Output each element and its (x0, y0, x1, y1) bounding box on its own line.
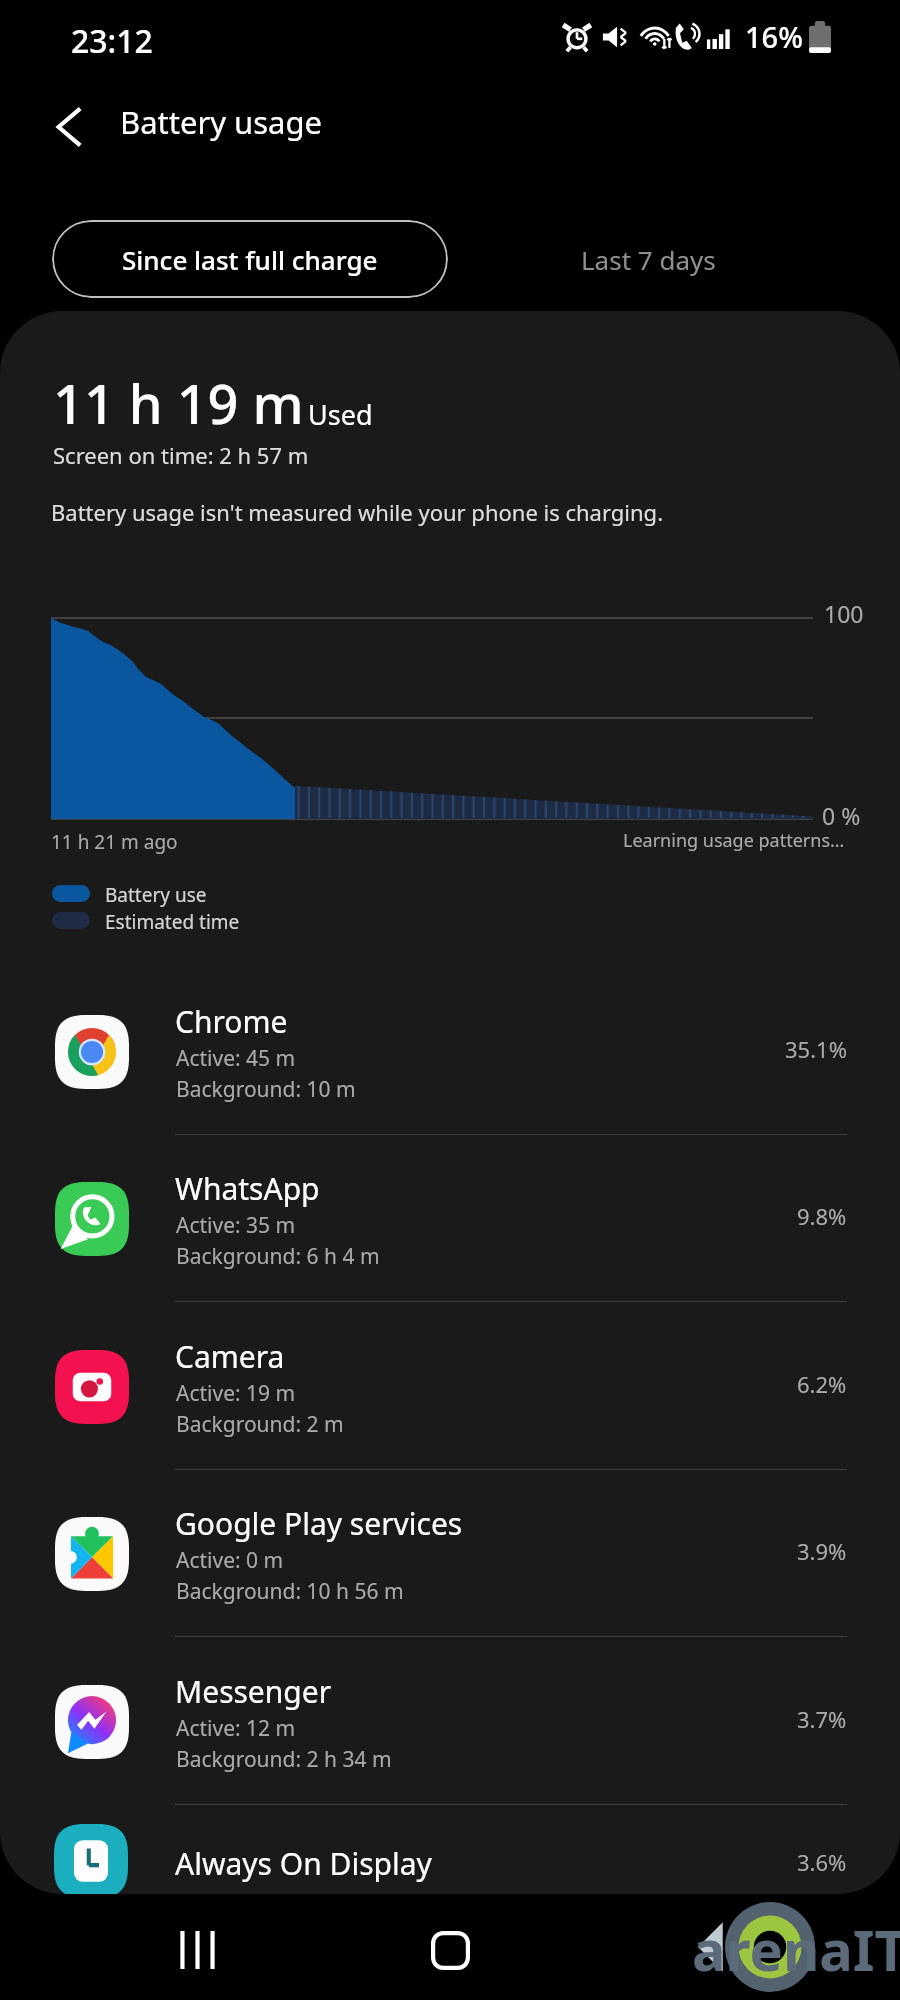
staticText: Active: 0 m (176, 1546, 284, 1575)
staticText: Estimated time (105, 909, 240, 935)
staticText: Messenger (175, 1671, 332, 1712)
button[interactable]: Always On Display (0, 1822, 900, 1894)
button[interactable]: WhatsApp (0, 1152, 900, 1319)
staticText: 35.1% (785, 1034, 847, 1064)
staticText: Background: 2 h 34 m (176, 1745, 392, 1774)
button[interactable]: Messenger (0, 1655, 900, 1822)
staticText: Used (308, 396, 373, 433)
staticText: WhatsApp (175, 1168, 320, 1209)
staticText: Background: 2 m (176, 1410, 344, 1439)
staticText: Battery usage isn't measured while your … (51, 497, 664, 527)
staticText: Always On Display (175, 1843, 432, 1884)
staticText: 9.8% (797, 1201, 847, 1231)
button[interactable]: Home (415, 1915, 485, 1985)
staticText: Active: 45 m (176, 1044, 296, 1073)
staticText: 11 h 19 m (53, 366, 304, 440)
button[interactable]: Last 7 days (470, 220, 826, 298)
staticText: 6.2% (797, 1369, 847, 1399)
staticText: Last 7 days (581, 242, 716, 277)
staticText: Camera (175, 1336, 285, 1377)
staticText: arenaIT (692, 1911, 900, 1987)
staticText: Active: 12 m (176, 1714, 296, 1743)
button[interactable]: Recents (162, 1915, 232, 1985)
staticText: 3.6% (797, 1847, 847, 1877)
staticText: Battery usage (120, 101, 323, 143)
staticText: 11 h 21 m ago (51, 829, 178, 855)
staticText: 100 (824, 598, 864, 629)
staticText: Since last full charge (122, 242, 378, 277)
staticText: 3.7% (797, 1704, 847, 1734)
button[interactable]: Since last full charge (52, 220, 448, 298)
button[interactable]: Google Play services (0, 1487, 900, 1654)
staticText: Learning usage patterns… (623, 828, 845, 853)
staticText: Background: 10 m (176, 1075, 356, 1104)
staticText: Google Play services (175, 1503, 463, 1544)
staticText: 23:12 (71, 19, 153, 63)
staticText: 16% (745, 17, 803, 56)
staticText: Active: 35 m (176, 1211, 296, 1240)
staticText: 3.9% (797, 1536, 847, 1566)
button[interactable]: Chrome (0, 985, 900, 1152)
staticText: Active: 19 m (176, 1379, 296, 1408)
staticText: 0 % (822, 800, 861, 831)
staticText: Chrome (175, 1001, 288, 1042)
button[interactable]: Back (36, 94, 102, 160)
button[interactable]: Camera (0, 1320, 900, 1487)
staticText: Screen on time: 2 h 57 m (53, 440, 309, 470)
staticText: Background: 6 h 4 m (176, 1242, 380, 1271)
staticText: Battery use (105, 882, 207, 908)
staticText: Background: 10 h 56 m (176, 1577, 404, 1606)
